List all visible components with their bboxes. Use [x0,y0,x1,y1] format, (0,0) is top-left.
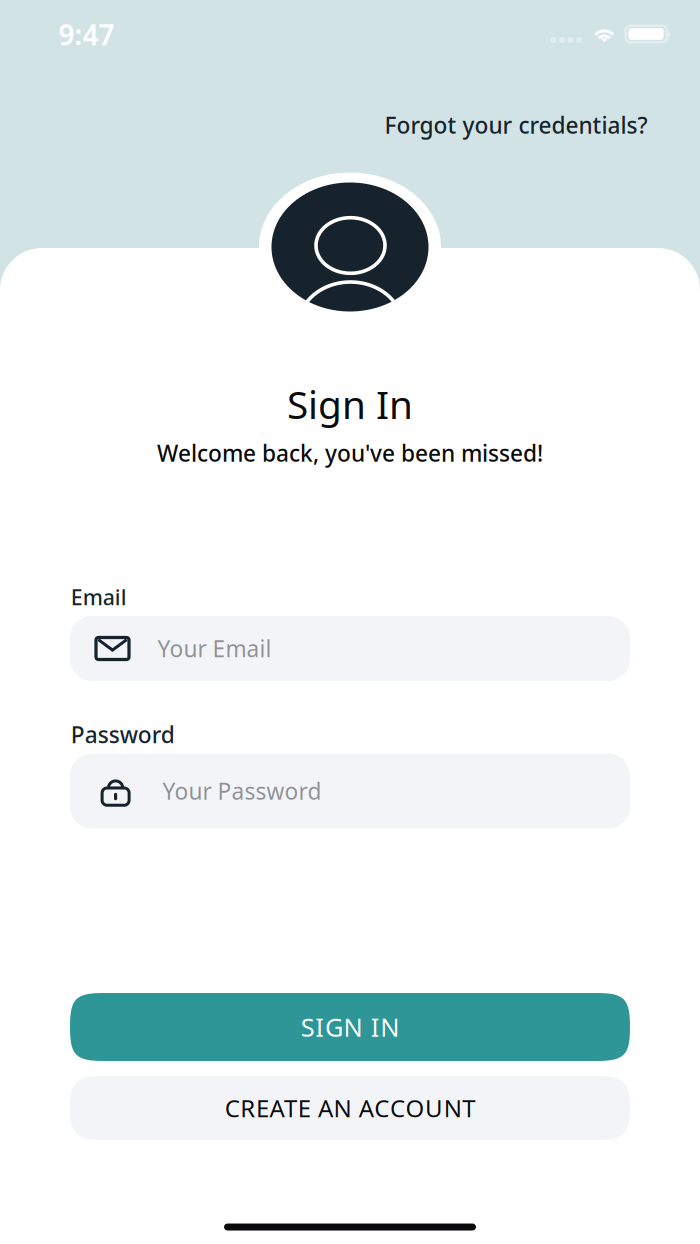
staticText: Welcome back, you've been missed! [157,438,543,468]
staticText: 9:47 [58,16,114,53]
staticText: CREATE AN ACCOUNT [225,1092,475,1124]
staticText: Your Password [162,776,321,806]
button[interactable]: Forgot your credentials? [384,110,647,140]
staticText: Email [71,583,127,611]
staticText: Forgot your credentials? [384,110,647,140]
button[interactable]: CREATE AN ACCOUNT [70,1076,630,1140]
button[interactable]: Your Password [70,753,630,828]
staticText: SIGN IN [301,1010,399,1044]
staticText: Password [71,719,175,749]
button[interactable]: SIGN IN [70,993,630,1061]
staticText: Your Email [157,633,271,663]
staticText: Sign In [287,378,413,430]
button[interactable]: Your Email [70,616,630,681]
